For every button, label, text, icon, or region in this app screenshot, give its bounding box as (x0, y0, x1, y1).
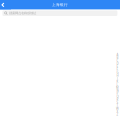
staticText: H (116, 73, 118, 77)
button[interactable]: M (115, 86, 120, 89)
staticText: Q (116, 94, 118, 98)
staticText: K (116, 79, 118, 83)
staticText: W (116, 106, 119, 110)
button[interactable]: B (115, 56, 120, 59)
staticText: A (116, 52, 118, 56)
button[interactable]: H (115, 74, 120, 77)
staticText: N (116, 88, 118, 92)
staticText: E (116, 64, 118, 68)
button[interactable]: L (115, 83, 120, 86)
button[interactable]: G (115, 71, 120, 74)
staticText: X (116, 109, 118, 113)
button[interactable]: P (115, 92, 120, 95)
button[interactable]: D (115, 62, 120, 65)
staticText: B (116, 55, 118, 59)
staticText: G (116, 70, 118, 74)
button[interactable]: N (115, 89, 120, 92)
button[interactable]: E (115, 65, 120, 68)
button[interactable]: A (115, 53, 120, 56)
staticText: P (116, 91, 118, 95)
button[interactable]: R (115, 98, 120, 101)
staticText: T (116, 103, 118, 107)
button[interactable]: Z (115, 113, 120, 116)
staticText: M (116, 85, 119, 89)
staticText: 上海银行 (52, 2, 68, 7)
button[interactable]: S (115, 101, 120, 104)
staticText: F (116, 67, 118, 71)
button[interactable]: J (115, 77, 120, 80)
button[interactable]: F (115, 68, 120, 71)
staticText: 搜索网点名称或地址 (9, 11, 36, 15)
staticText: S (116, 100, 118, 104)
staticText: R (116, 97, 118, 101)
staticText: J (117, 76, 118, 80)
button[interactable]: X (115, 110, 120, 113)
staticText: L (116, 82, 118, 86)
button[interactable]: C (115, 59, 120, 62)
button[interactable]: Back (0, 0, 11, 9)
button[interactable]: K (115, 80, 120, 83)
staticText: Z (116, 112, 118, 116)
button[interactable]: W (115, 107, 120, 110)
button[interactable]: Q (115, 95, 120, 98)
staticText: D (116, 61, 118, 65)
button[interactable]: T (115, 104, 120, 107)
staticText: C (116, 58, 118, 62)
